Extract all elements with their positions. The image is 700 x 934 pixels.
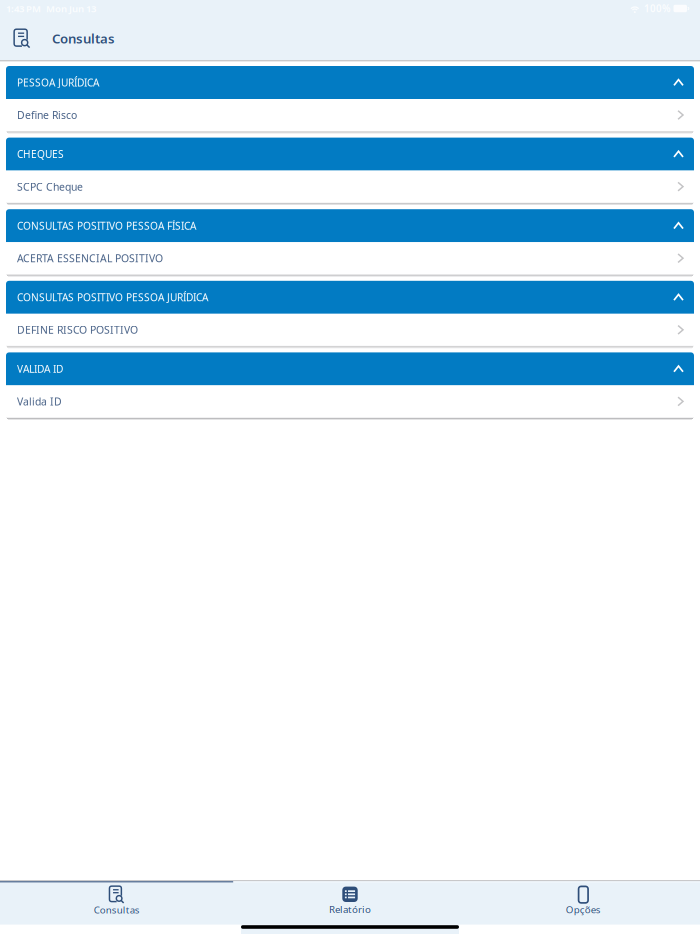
staticText: 1:43 PM: [6, 2, 41, 15]
button[interactable]: Valida ID: [6, 385, 694, 417]
staticText: Valida ID: [17, 394, 62, 408]
button[interactable]: Consultas: [12, 27, 32, 49]
staticText: CHEQUES: [17, 147, 64, 161]
staticText: CONSULTAS POSITIVO PESSOA JURÍDICA: [17, 291, 208, 304]
button[interactable]: Opções: [467, 883, 700, 925]
button[interactable]: Relatório: [233, 883, 467, 925]
staticText: Define Risco: [17, 108, 77, 122]
button[interactable]: ACERTA ESSENCIAL POSITIVO: [6, 242, 694, 274]
button[interactable]: VALIDA ID: [6, 352, 694, 385]
staticText: DEFINE RISCO POSITIVO: [17, 323, 138, 337]
staticText: CONSULTAS POSITIVO PESSOA FÍSICA: [17, 219, 196, 232]
button[interactable]: CONSULTAS POSITIVO PESSOA JURÍDICA: [6, 281, 694, 314]
button[interactable]: CONSULTAS POSITIVO PESSOA FÍSICA: [6, 209, 694, 242]
staticText: Consultas: [94, 903, 140, 916]
button[interactable]: Define Risco: [6, 99, 694, 131]
button[interactable]: Consultas: [0, 883, 233, 925]
staticText: 100%: [644, 2, 671, 15]
button[interactable]: CHEQUES: [6, 138, 694, 171]
staticText: Opções: [566, 903, 601, 916]
staticText: SCPC Cheque: [17, 180, 83, 193]
staticText: VALIDA ID: [17, 362, 63, 376]
staticText: Consultas: [52, 30, 115, 47]
button[interactable]: DEFINE RISCO POSITIVO: [6, 314, 694, 346]
staticText: Mon Jun 13: [46, 2, 96, 15]
button[interactable]: PESSOA JURÍDICA: [6, 66, 694, 99]
staticText: ACERTA ESSENCIAL POSITIVO: [17, 251, 163, 265]
staticText: PESSOA JURÍDICA: [17, 76, 99, 89]
button[interactable]: SCPC Cheque: [6, 171, 694, 203]
staticText: Relatório: [329, 903, 371, 916]
